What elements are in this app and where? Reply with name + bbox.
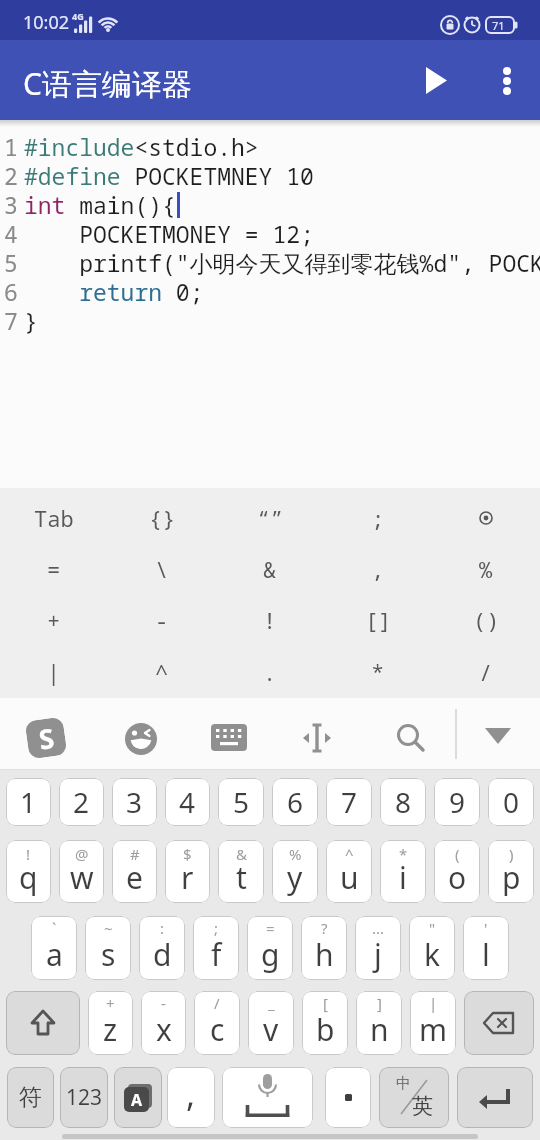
button[interactable] (432, 492, 540, 543)
button[interactable]: S (24, 716, 67, 759)
button[interactable]: 3 (112, 778, 157, 826)
staticText: 71 (492, 18, 505, 33)
staticText: 9 (449, 783, 466, 821)
button[interactable]: ] (356, 991, 402, 1055)
staticText: int main(){ (24, 189, 176, 218)
button[interactable]: ( (434, 840, 480, 903)
staticText: ~ (104, 918, 113, 938)
button[interactable]: 0 (488, 778, 534, 826)
button[interactable] (211, 724, 247, 751)
staticText: v (263, 1009, 279, 1050)
button[interactable]: & (218, 840, 264, 903)
button[interactable]: " (409, 916, 455, 980)
button[interactable]: # (112, 840, 157, 903)
staticText: ; (214, 918, 219, 938)
staticText: y (287, 857, 303, 898)
staticText: d (153, 934, 172, 975)
staticText: , (371, 554, 385, 584)
button[interactable]: Tab (0, 492, 108, 543)
button[interactable]: ^ (326, 840, 372, 903)
button[interactable]: & (216, 543, 324, 594)
button[interactable]: 符 (7, 1067, 54, 1128)
staticText: p (502, 857, 521, 898)
button[interactable]: ~ (85, 916, 131, 980)
button[interactable]: 6 (272, 778, 318, 826)
button[interactable]: () (432, 594, 540, 646)
button[interactable]: + (0, 594, 108, 646)
staticText: h (315, 934, 334, 975)
staticText: x (156, 1009, 172, 1050)
button[interactable]: \ (108, 543, 216, 594)
button[interactable]: 9 (434, 778, 480, 826)
button[interactable]: {} (108, 492, 216, 543)
button[interactable]: ; (193, 916, 239, 980)
button[interactable] (464, 991, 534, 1055)
button[interactable] (299, 723, 335, 755)
staticText: “” (257, 503, 284, 533)
staticText: C语言编译器 (23, 63, 192, 104)
button[interactable]: ; (324, 492, 432, 543)
button[interactable] (395, 722, 427, 754)
button[interactable] (457, 1067, 533, 1128)
button[interactable]: = (247, 916, 293, 980)
button[interactable]: 1 (6, 778, 51, 826)
button[interactable]: 5 (218, 778, 264, 826)
button[interactable]: 7 (326, 778, 372, 826)
button[interactable]: ? (301, 916, 347, 980)
button[interactable]: $ (165, 840, 210, 903)
button[interactable]: / (194, 991, 240, 1055)
button[interactable]: , (324, 543, 432, 594)
button[interactable] (124, 722, 158, 756)
button[interactable]: ' (463, 916, 509, 980)
button[interactable]: * (324, 646, 432, 698)
staticText: i (399, 857, 407, 898)
button[interactable]: % (432, 543, 540, 594)
button[interactable]: _ (248, 991, 294, 1055)
button[interactable]: % (272, 840, 318, 903)
button[interactable]: + (88, 991, 133, 1055)
staticText: o (448, 857, 467, 898)
staticText: w (70, 857, 94, 898)
staticText: 1 (20, 783, 37, 821)
button[interactable]: 2 (59, 778, 104, 826)
button[interactable]: : (139, 916, 185, 980)
button[interactable]: . (216, 646, 324, 698)
button[interactable]: 8 (380, 778, 426, 826)
button[interactable]: 4 (165, 778, 210, 826)
button[interactable]: | (0, 646, 108, 698)
button[interactable] (412, 56, 460, 104)
button[interactable]: “” (216, 492, 324, 543)
button[interactable]: A (114, 1067, 162, 1128)
staticText: : (160, 918, 165, 938)
button[interactable] (6, 991, 80, 1055)
staticText: - (155, 605, 169, 635)
button[interactable]: - (108, 594, 216, 646)
staticText: + (47, 605, 61, 635)
button[interactable]: ` (31, 916, 77, 980)
button[interactable] (480, 722, 516, 750)
button[interactable]: - (141, 991, 186, 1055)
button[interactable] (483, 56, 531, 104)
button[interactable]: | (410, 991, 456, 1055)
button[interactable] (325, 1067, 371, 1128)
button[interactable]: 中 (379, 1067, 449, 1128)
button[interactable]: [ (302, 991, 348, 1055)
button[interactable]: 123 (60, 1067, 108, 1128)
button[interactable]: , (167, 1067, 215, 1128)
button[interactable]: / (432, 646, 540, 698)
button[interactable] (222, 1067, 313, 1128)
button[interactable]: ) (488, 840, 534, 903)
button[interactable]: … (355, 916, 401, 980)
button[interactable]: * (380, 840, 426, 903)
button[interactable]: ! (216, 594, 324, 646)
button[interactable]: = (0, 543, 108, 594)
staticText: ^ (155, 657, 169, 687)
button[interactable]: ^ (108, 646, 216, 698)
button[interactable]: @ (59, 840, 104, 903)
staticText: ) (509, 844, 514, 864)
staticText: () (473, 605, 500, 635)
staticText: ` (52, 918, 57, 938)
button[interactable]: ! (6, 840, 51, 903)
button[interactable]: [] (324, 594, 432, 646)
staticText: n (370, 1009, 389, 1050)
